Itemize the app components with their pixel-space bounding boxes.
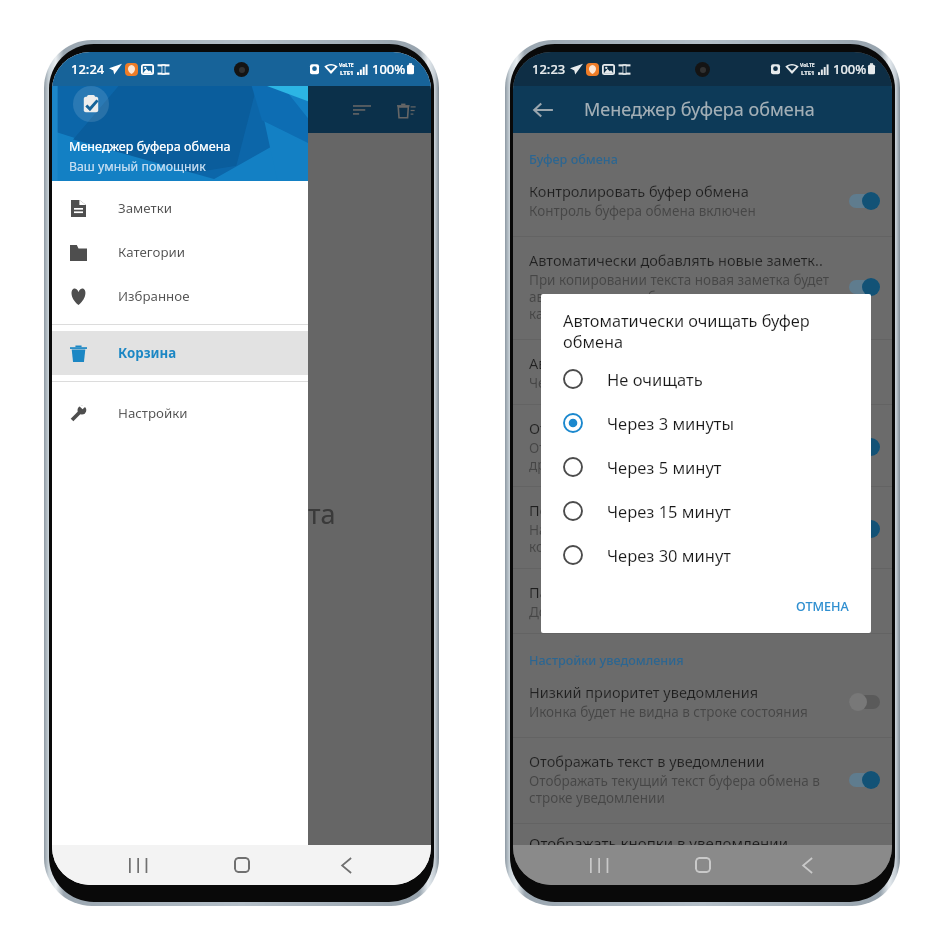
staticText: Отображать текущий текст буфера обмена в…: [529, 772, 820, 807]
staticText: Отображать плавающую кнопку: [529, 418, 756, 438]
staticText: Дополнительные параметры: [529, 603, 720, 621]
staticText: Через 15 минут: [607, 500, 731, 522]
staticText: Настройки уведомления: [529, 652, 684, 669]
button[interactable]: Заметки: [52, 186, 308, 230]
staticText: Ваш умный помощник: [69, 158, 206, 175]
staticText: Автоматически очищать буфер обмена: [529, 353, 806, 373]
button[interactable]: Отображать текст в уведомлении: [513, 738, 892, 823]
button[interactable]: [849, 770, 880, 789]
staticText: Через 30 минут: [607, 544, 731, 566]
staticText: VoLTE: [800, 62, 815, 69]
staticText: 100%: [372, 60, 406, 78]
button[interactable]: Через 30 минут: [541, 533, 871, 577]
button[interactable]: Автоматически очищать буфер обмена: [513, 340, 892, 404]
button[interactable]: Автоматически добавлять новые заметк..: [513, 237, 892, 339]
staticText: Корзина пуста: [148, 495, 336, 532]
button[interactable]: Отображать плавающую кнопку: [513, 405, 892, 486]
button[interactable]: Sort: [343, 91, 381, 129]
button[interactable]: [849, 692, 880, 711]
staticText: Не очищать: [607, 368, 703, 390]
staticText: Менеджер буфера обмена: [69, 138, 231, 155]
staticText: Через 3 минуты: [607, 412, 735, 434]
button[interactable]: Не очищать: [541, 357, 871, 401]
staticText: 12:24: [71, 60, 105, 78]
staticText: Параметры буфера обмена: [529, 582, 722, 602]
staticText: Категории: [118, 243, 186, 261]
button[interactable]: Корзина: [52, 331, 308, 375]
button[interactable]: Home: [681, 845, 725, 885]
button[interactable]: [849, 277, 880, 296]
staticText: Низкий приоритет уведомления: [529, 682, 759, 702]
staticText: Настройки: [118, 404, 188, 422]
button[interactable]: Back: [525, 92, 561, 128]
staticText: Буфер обмена: [529, 151, 618, 168]
button[interactable]: Recents: [577, 845, 621, 885]
button[interactable]: [849, 191, 880, 210]
button[interactable]: [849, 519, 880, 538]
staticText: VoLTE: [339, 62, 354, 69]
staticText: ОТМЕНА: [796, 598, 849, 615]
button[interactable]: Back: [324, 845, 368, 885]
button[interactable]: Через 5 минут: [541, 445, 871, 489]
staticText: Заметки: [118, 199, 172, 217]
button[interactable]: Delete all: [387, 91, 425, 129]
staticText: Корзина: [118, 344, 177, 362]
button[interactable]: Через 3 минуты: [541, 401, 871, 445]
staticText: Наличие всплывающего окна при копировани…: [529, 521, 753, 556]
staticText: Через 5 минут: [607, 456, 722, 478]
staticText: Автоматически добавлять новые заметк..: [529, 250, 823, 270]
button[interactable]: Настройки: [52, 391, 308, 435]
button[interactable]: Через 15 минут: [541, 489, 871, 533]
button[interactable]: [849, 437, 880, 456]
staticText: Отображать плавающую кнопку поверх други…: [529, 439, 790, 474]
staticText: Отображать текст в уведомлении: [529, 751, 765, 771]
staticText: LTE1: [801, 69, 815, 77]
staticText: Отображать кнопки в уведомлении: [529, 833, 788, 845]
staticText: При копировании текста новая заметка буд…: [529, 271, 830, 323]
button[interactable]: Recents: [116, 845, 160, 885]
button[interactable]: Home: [220, 845, 264, 885]
button[interactable]: Показывать всплывающее окно: [513, 487, 892, 568]
button[interactable]: Избранное: [52, 274, 308, 318]
button[interactable]: Контролировать буфер обмена: [513, 168, 892, 236]
staticText: Автоматически очищать буфер обмена: [563, 310, 829, 353]
staticText: Менеджер буфера обмена: [584, 97, 815, 122]
button[interactable]: Категории: [52, 230, 308, 274]
staticText: Контролировать буфер обмена: [529, 181, 749, 201]
staticText: Показывать всплывающее окно: [529, 500, 755, 520]
staticText: 100%: [833, 60, 867, 78]
button[interactable]: Низкий приоритет уведомления: [513, 669, 892, 737]
staticText: LTE1: [340, 69, 354, 77]
button[interactable]: Параметры буфера обмена: [513, 569, 892, 633]
button[interactable]: Back: [785, 845, 829, 885]
staticText: Иконка будет не видна в строке состояния: [529, 703, 808, 721]
button[interactable]: ОТМЕНА: [788, 592, 857, 621]
staticText: Избранное: [118, 287, 190, 305]
staticText: Через 3 минуты: [529, 374, 633, 392]
staticText: Контроль буфера обмена включен: [529, 202, 756, 220]
staticText: 12:23: [532, 60, 566, 78]
